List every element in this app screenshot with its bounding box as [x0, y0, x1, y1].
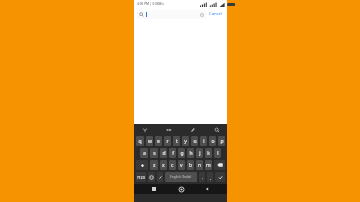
staticText: o [211, 138, 215, 145]
button[interactable]: Emoji [148, 172, 155, 182]
button[interactable]: t [173, 136, 180, 146]
button[interactable]: w [146, 136, 153, 146]
staticText: q [138, 138, 142, 145]
staticText: i [203, 138, 205, 145]
button[interactable]: u [191, 136, 198, 146]
button[interactable]: a [140, 148, 148, 158]
staticText: k [207, 150, 210, 157]
button[interactable]: Search [137, 10, 206, 19]
staticText: b [189, 162, 193, 169]
staticText: r [166, 138, 169, 145]
button[interactable]: g [178, 148, 185, 158]
button[interactable]: . [199, 172, 205, 182]
button[interactable]: Enter [215, 172, 225, 182]
staticText: English (India) [170, 175, 192, 179]
button[interactable]: k [205, 148, 212, 158]
staticText: c [171, 162, 174, 169]
staticText: a [143, 150, 146, 157]
staticText: e [157, 138, 160, 145]
staticText: n [198, 162, 202, 169]
button[interactable]: x [160, 160, 167, 170]
button[interactable]: m [205, 160, 212, 170]
staticText: x [162, 162, 165, 169]
button[interactable]: Tune [140, 125, 149, 134]
staticText: j [199, 150, 201, 157]
staticText: d [162, 150, 166, 157]
button[interactable]: i [200, 136, 207, 146]
button[interactable]: e [155, 136, 162, 146]
staticText: h [189, 150, 193, 157]
button[interactable]: c [169, 160, 176, 170]
staticText: ?123 [137, 175, 145, 180]
staticText: f [172, 150, 174, 157]
button[interactable]: q [136, 136, 144, 146]
staticText: , [210, 175, 211, 180]
staticText: l [217, 150, 219, 157]
button[interactable]: z [150, 160, 158, 170]
button[interactable]: English (India) [165, 172, 197, 182]
button[interactable]: j [196, 148, 203, 158]
staticText: . [202, 175, 203, 180]
staticText: g [180, 150, 184, 157]
staticText: v [180, 162, 183, 169]
staticText: t [176, 138, 178, 145]
staticText: u [193, 138, 197, 145]
button[interactable]: n [196, 160, 203, 170]
button[interactable]: Back [201, 184, 213, 194]
button[interactable]: Handwriting [188, 125, 197, 134]
button[interactable]: Translate [164, 125, 173, 134]
staticText: s [153, 150, 156, 157]
button[interactable]: Clear [200, 13, 204, 17]
button[interactable]: d [160, 148, 167, 158]
button[interactable]: Shift [136, 160, 148, 170]
button[interactable]: Backspace [214, 160, 225, 170]
staticText: w [148, 138, 152, 145]
button[interactable]: f [169, 148, 176, 158]
button[interactable]: o [209, 136, 216, 146]
button[interactable]: h [187, 148, 194, 158]
button[interactable]: r [164, 136, 171, 146]
staticText: m [206, 162, 211, 169]
button[interactable]: Recents [148, 184, 160, 194]
button[interactable]: , [207, 172, 213, 182]
button[interactable]: v [178, 160, 185, 170]
button[interactable]: Voice input [157, 172, 163, 182]
staticText: Cancel [209, 11, 223, 17]
staticText: p [220, 138, 224, 145]
staticText: y [184, 138, 187, 145]
button[interactable]: s [150, 148, 158, 158]
button[interactable]: b [187, 160, 194, 170]
button[interactable]: Search [212, 125, 221, 134]
staticText: 4:05 PM | 0.0KB/s [137, 2, 164, 6]
button[interactable]: y [182, 136, 189, 146]
other: Search [139, 12, 144, 17]
button[interactable]: Home [175, 184, 187, 194]
button[interactable]: Cancel [208, 9, 224, 19]
button[interactable]: p [218, 136, 225, 146]
button[interactable]: ?123 [136, 172, 146, 182]
staticText: z [153, 162, 156, 169]
button[interactable]: l [214, 148, 221, 158]
